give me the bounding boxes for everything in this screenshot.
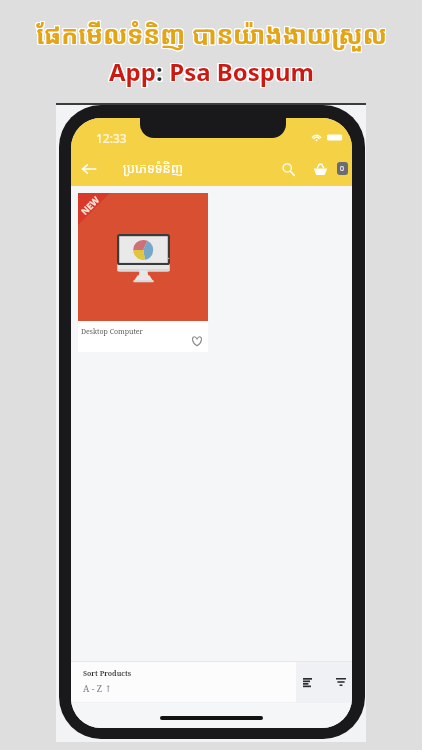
button[interactable]: Filter — [330, 671, 352, 693]
staticText: ផែកមើលទំនិញ បានយ៉ាងងាយស្រួល — [37, 16, 388, 50]
button[interactable]: Search — [276, 157, 300, 181]
staticText: 12:33 — [96, 130, 127, 146]
staticText: App — [109, 55, 156, 88]
button[interactable]: Add to favourites — [191, 335, 203, 347]
staticText: : — [156, 55, 163, 88]
button[interactable]: Back — [76, 156, 102, 182]
staticText: ផែកមើលទំនិញ បានយ៉ាងងាយស្រួល — [36, 17, 387, 51]
staticText: A - Z ↑ — [83, 682, 113, 694]
staticText: App: Psa Bospum — [108, 54, 313, 87]
button[interactable]: 0 — [337, 162, 348, 175]
staticText: ផែកមើលទំនិញ បានយ៉ាងងាយស្រួល — [36, 18, 387, 52]
staticText: App: Psa Bospum — [109, 56, 314, 89]
staticText: ប្រភេទទំនិញ — [123, 159, 184, 177]
staticText: Psa Bospum — [163, 55, 314, 88]
button[interactable]: Sort — [296, 671, 318, 693]
staticText: ផែកមើលទំនិញ បានយ៉ាងងាយស្រួល — [35, 18, 386, 52]
button[interactable]: NEW — [78, 193, 208, 352]
staticText: 0 — [340, 164, 345, 174]
staticText: Sort Products — [83, 669, 132, 679]
staticText: Desktop Computer — [81, 327, 143, 337]
staticText: ផែកមើលទំនិញ បានយ៉ាងងាយស្រួល — [37, 18, 388, 52]
staticText: App: Psa Bospum — [109, 54, 314, 87]
staticText: NEW — [78, 193, 102, 217]
button[interactable]: Sort Products — [71, 662, 296, 702]
staticText: App: Psa Bospum — [108, 55, 313, 88]
staticText: App: Psa Bospum — [110, 54, 315, 87]
staticText: App: Psa Bospum — [108, 56, 313, 89]
staticText: ផែកមើលទំនិញ បានយ៉ាងងាយស្រួល — [35, 17, 386, 51]
staticText: ផែកមើលទំនិញ បានយ៉ាងងាយស្រួល — [37, 17, 388, 51]
staticText: App: Psa Bospum — [110, 55, 315, 88]
staticText: ផែកមើលទំនិញ បានយ៉ាងងាយស្រួល — [36, 16, 387, 50]
staticText: App: Psa Bospum — [110, 56, 315, 89]
button[interactable]: Cart — [309, 158, 331, 180]
staticText: ផែកមើលទំនិញ បានយ៉ាងងាយស្រួល — [35, 16, 386, 50]
